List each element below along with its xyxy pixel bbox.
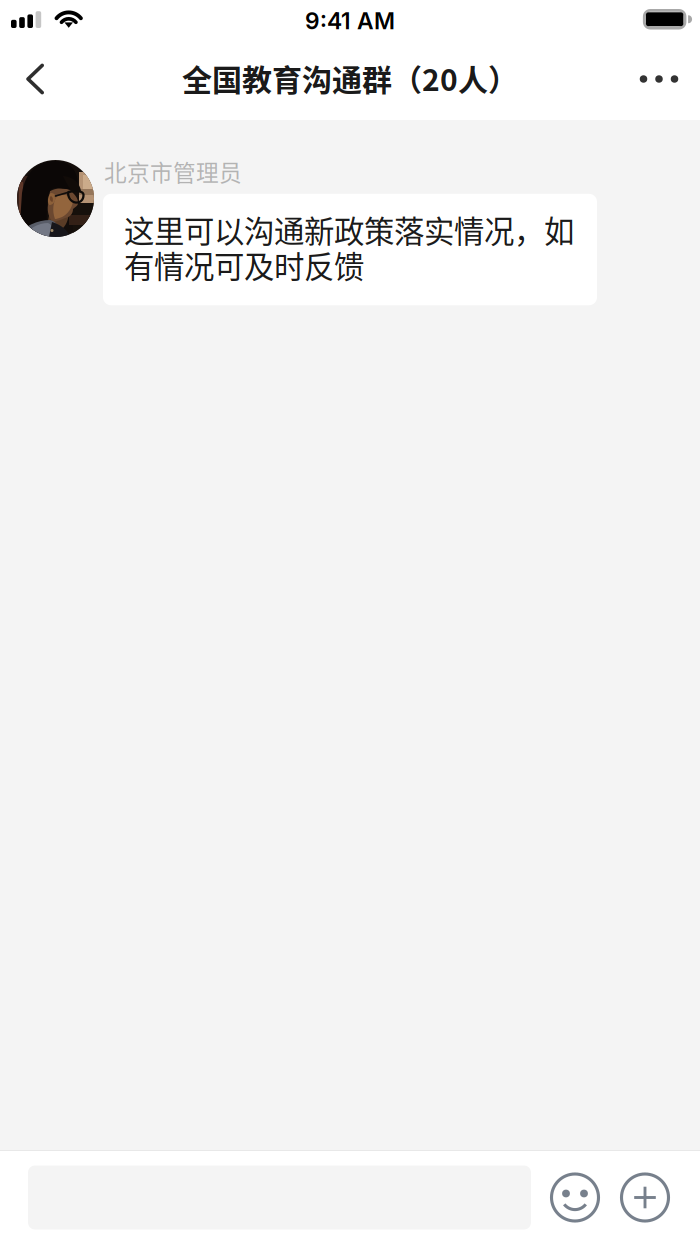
staticText: 9:41 AM	[305, 7, 395, 35]
button[interactable]: Emoji	[550, 1172, 600, 1222]
button[interactable]: Back	[6, 48, 64, 116]
button[interactable]: More	[620, 1172, 670, 1222]
button[interactable]: More options	[629, 48, 689, 116]
staticText: 这里可以沟通新政策落实情况，如有情况可及时反馈	[124, 212, 574, 282]
staticText: 北京市管理员	[104, 155, 242, 188]
staticText: 全国教育沟通群（20人）	[182, 56, 518, 100]
